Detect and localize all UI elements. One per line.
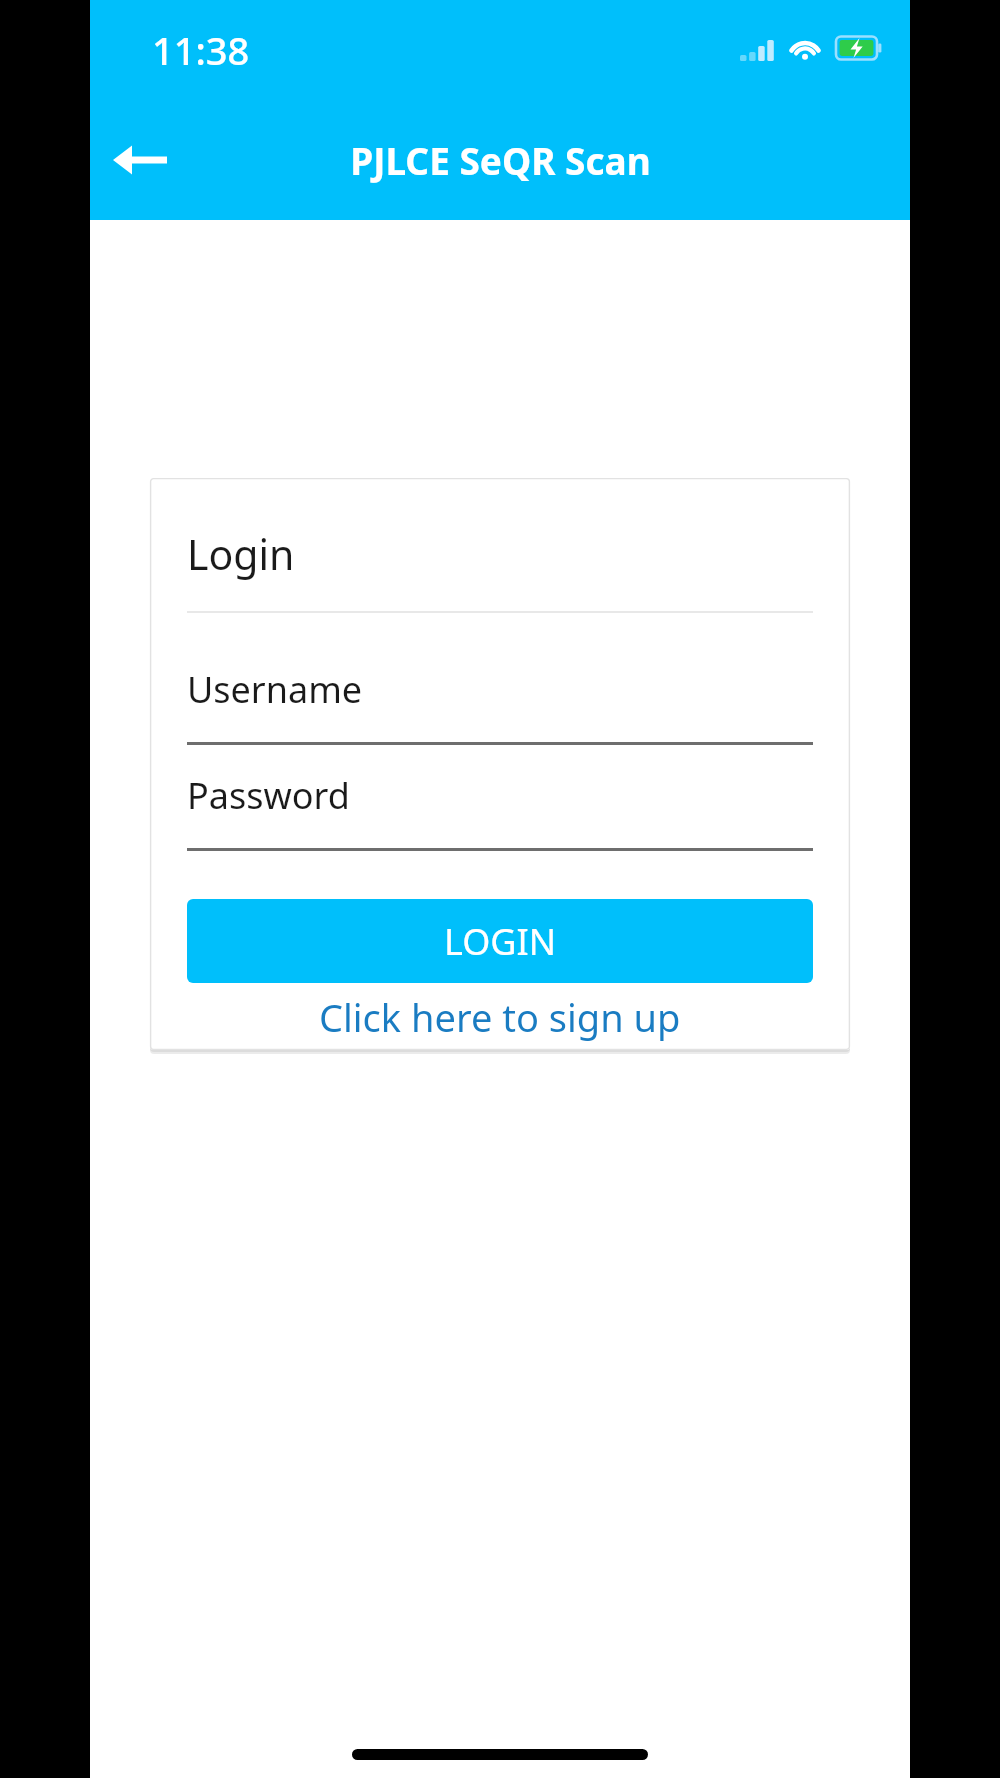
staticText: Username	[187, 665, 363, 714]
button[interactable]: Username	[187, 665, 813, 745]
button[interactable]: Click here to sign up	[187, 983, 813, 1050]
button[interactable]: Password	[187, 771, 813, 851]
staticText: Login	[187, 526, 295, 582]
staticText: 11:38	[152, 24, 250, 76]
staticText: PJLCE SeQR Scan	[350, 135, 651, 185]
staticText: Password	[187, 771, 350, 820]
button[interactable]: LOGIN	[187, 899, 813, 983]
staticText: Click here to sign up	[319, 991, 681, 1043]
button[interactable]: Back	[102, 122, 178, 198]
staticText: LOGIN	[444, 917, 557, 966]
